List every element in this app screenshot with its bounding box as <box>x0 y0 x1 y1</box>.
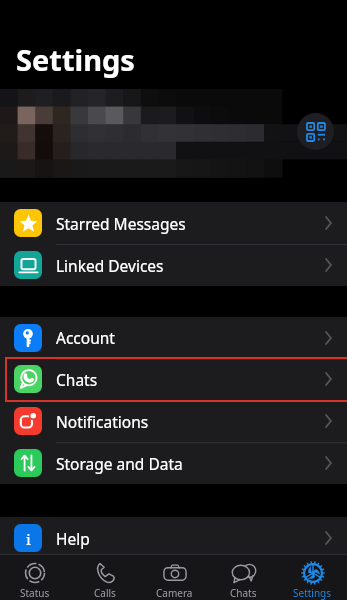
button[interactable]: QR code <box>297 113 334 150</box>
button[interactable]: Chats <box>0 358 347 400</box>
staticText: Starred Messages <box>56 213 186 234</box>
staticText: Chats <box>56 369 98 390</box>
button[interactable]: Storage and Data <box>0 442 347 484</box>
button[interactable]: QR code <box>0 86 347 178</box>
staticText: Storage and Data <box>56 453 183 474</box>
button[interactable]: Camera <box>140 555 209 600</box>
staticText: Help <box>56 528 90 549</box>
staticText: Status <box>20 586 50 600</box>
button[interactable]: Chats <box>209 555 278 600</box>
staticText: Settings <box>16 40 135 79</box>
staticText: i <box>26 529 31 547</box>
staticText: Notifications <box>56 411 149 432</box>
staticText: Settings <box>293 586 332 600</box>
staticText: Calls <box>94 586 116 600</box>
button[interactable]: Settings <box>278 555 347 600</box>
button[interactable]: Notifications <box>0 400 347 442</box>
button[interactable]: Starred Messages <box>0 202 347 244</box>
button[interactable]: Account <box>0 317 347 358</box>
staticText: Linked Devices <box>56 255 164 276</box>
staticText: Chats <box>230 586 257 600</box>
button[interactable]: Status <box>0 555 70 600</box>
button[interactable]: i <box>0 517 347 559</box>
staticText: Camera <box>156 586 193 600</box>
button[interactable]: Linked Devices <box>0 244 347 286</box>
button[interactable]: Calls <box>70 555 140 600</box>
staticText: Account <box>56 327 115 348</box>
